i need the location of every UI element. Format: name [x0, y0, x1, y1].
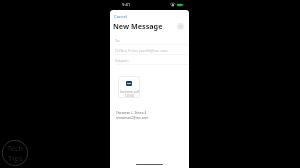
button[interactable]: To:	[110, 35, 189, 45]
button[interactable]: Subject:	[110, 55, 189, 65]
staticText: Subject:	[115, 58, 129, 63]
button[interactable]: Showman L. Stineo 4	[116, 111, 149, 119]
button[interactable]: Cc/Bcc, From: jsmith@me.com	[110, 45, 189, 55]
button[interactable]: Cancel	[113, 14, 129, 20]
staticText: 9:41	[122, 2, 131, 8]
staticText: Tips	[8, 153, 23, 163]
staticText: 120 KB	[125, 94, 134, 98]
staticText: Cancel	[114, 14, 128, 20]
staticText: New Message	[113, 21, 163, 31]
staticText: Showman L. Stineo 4	[116, 111, 147, 115]
button[interactable]: Invitation.pdf	[118, 76, 140, 98]
button[interactable]: Send	[177, 23, 184, 30]
staticText: To:	[115, 38, 121, 43]
other: Status icons	[171, 3, 184, 7]
staticText: Tech	[7, 143, 24, 153]
staticText: Cc/Bcc, From: jsmith@me.com	[115, 48, 168, 53]
staticText: showman2@me.com	[116, 115, 149, 119]
staticText: Invitation.pdf	[120, 90, 139, 94]
